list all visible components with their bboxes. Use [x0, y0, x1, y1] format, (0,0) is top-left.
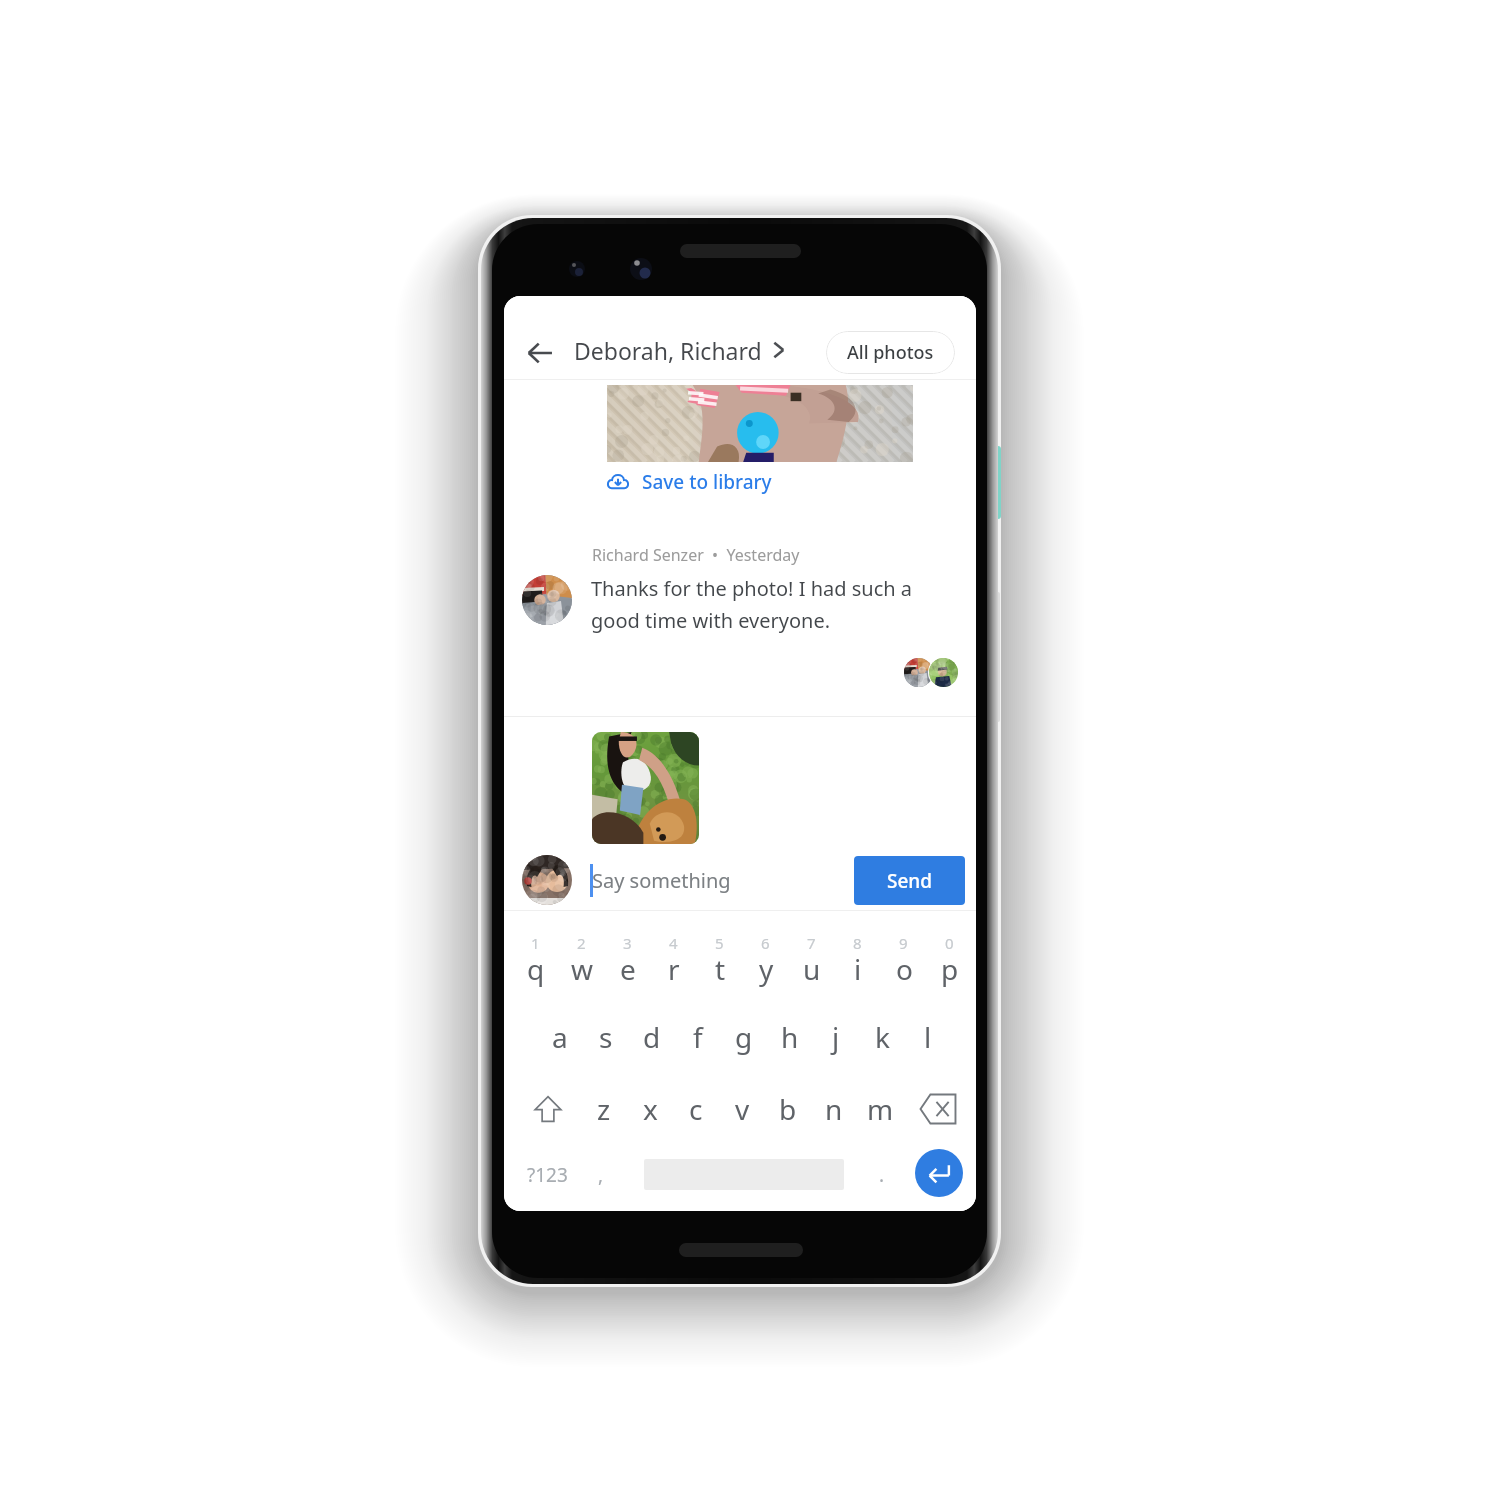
staticText: o [896, 950, 913, 988]
staticText: v [735, 1090, 750, 1128]
button[interactable]: i [835, 946, 881, 992]
staticText: 1 [531, 933, 540, 953]
staticText: z [597, 1090, 611, 1128]
staticText: r [668, 950, 680, 988]
staticText: 2 [577, 933, 586, 953]
staticText: . [879, 1162, 885, 1188]
button[interactable]: t [697, 946, 743, 992]
button[interactable]: z [581, 1086, 627, 1132]
staticText: a [552, 1018, 568, 1056]
button[interactable]: q [513, 946, 559, 992]
button[interactable]: Backspace [915, 1086, 961, 1132]
staticText: Send [887, 868, 933, 894]
staticText: Save to library [642, 469, 772, 495]
button[interactable]: j [813, 1014, 859, 1060]
button[interactable]: d [629, 1014, 675, 1060]
button[interactable]: b [765, 1086, 811, 1132]
staticText: w [571, 950, 594, 988]
staticText: j [832, 1018, 840, 1056]
button[interactable]: Deborah, Richard [574, 327, 788, 373]
button[interactable]: Send [854, 856, 965, 905]
staticText: h [781, 1018, 799, 1056]
staticText: 9 [899, 933, 908, 953]
staticText: b [779, 1090, 797, 1128]
button[interactable]: v [719, 1086, 765, 1132]
button[interactable]: x [627, 1086, 673, 1132]
staticText: 3 [623, 933, 632, 953]
staticText: u [803, 950, 821, 988]
staticText: l [924, 1018, 932, 1056]
staticText: e [620, 950, 636, 988]
staticText: c [689, 1090, 703, 1128]
button[interactable]: u [789, 946, 835, 992]
button[interactable]: l [905, 1014, 951, 1060]
button[interactable]: . [870, 1155, 894, 1195]
staticText: x [643, 1090, 658, 1128]
staticText: g [735, 1018, 753, 1056]
staticText: n [825, 1090, 843, 1128]
button[interactable]: r [651, 946, 697, 992]
staticText: Richard Senzer • Yesterday [592, 544, 800, 566]
staticText: p [941, 950, 959, 988]
button[interactable]: a [537, 1014, 583, 1060]
button[interactable]: c [673, 1086, 719, 1132]
staticText: m [867, 1090, 894, 1128]
button[interactable]: Save to library [606, 467, 772, 497]
button[interactable]: g [721, 1014, 767, 1060]
staticText: , [598, 1162, 604, 1188]
staticText: Say something [592, 867, 731, 894]
button[interactable]: k [859, 1014, 905, 1060]
button[interactable]: Enter [915, 1149, 963, 1197]
button[interactable]: y [743, 946, 789, 992]
staticText: f [693, 1018, 703, 1056]
staticText: 6 [761, 933, 770, 953]
button[interactable]: n [811, 1086, 857, 1132]
staticText: 4 [669, 933, 678, 953]
button[interactable]: p [927, 946, 973, 992]
staticText: 8 [853, 933, 862, 953]
button[interactable]: , [589, 1155, 613, 1195]
staticText: i [854, 950, 862, 988]
staticText: y [759, 950, 774, 988]
staticText: All photos [847, 340, 934, 365]
button[interactable]: All photos [826, 331, 955, 374]
button[interactable]: Back [517, 330, 563, 376]
staticText: k [875, 1018, 890, 1056]
staticText: t [715, 950, 726, 988]
staticText: 5 [715, 933, 724, 953]
staticText: q [527, 950, 545, 988]
button[interactable]: o [881, 946, 927, 992]
button[interactable]: m [857, 1086, 903, 1132]
button[interactable]: ?123 [518, 1155, 576, 1195]
button[interactable]: w [559, 946, 605, 992]
button[interactable]: s [583, 1014, 629, 1060]
button[interactable]: f [675, 1014, 721, 1060]
button[interactable]: e [605, 946, 651, 992]
staticText: 7 [807, 933, 816, 953]
staticText: 0 [945, 933, 954, 953]
staticText: d [643, 1018, 661, 1056]
staticText: ?123 [527, 1162, 568, 1188]
button[interactable]: h [767, 1014, 813, 1060]
staticText: Deborah, Richard [574, 335, 762, 366]
staticText: s [599, 1018, 613, 1056]
staticText: Thanks for the photo! I had such a good … [591, 575, 913, 634]
button[interactable]: Shift [525, 1086, 571, 1132]
